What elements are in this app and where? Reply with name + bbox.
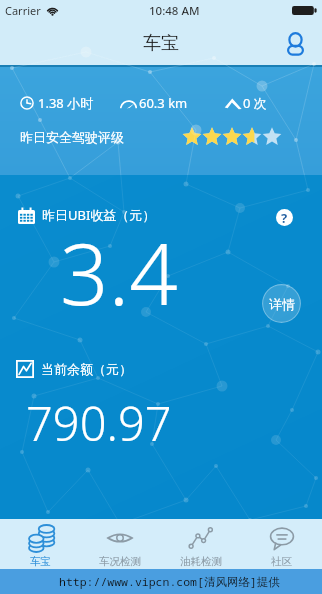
button[interactable]: 车宝 (0, 519, 80, 569)
staticText: 790.97 (26, 391, 172, 455)
staticText: 详情 (269, 296, 295, 312)
staticText: 油耗检测 (180, 555, 222, 568)
button[interactable]: Help (276, 209, 293, 226)
staticText: 60.3 km (139, 94, 188, 112)
staticText: 1.38 小时 (38, 94, 94, 112)
staticText: Carrier (5, 3, 41, 18)
button[interactable]: 车况检测 (80, 519, 160, 569)
staticText: 社区 (271, 555, 292, 568)
staticText: ? (281, 209, 288, 226)
staticText: 10:48 AM (149, 3, 200, 19)
staticText: http://www.vipcn.com[清风网络]提供 (59, 574, 280, 590)
staticText: 车况检测 (99, 555, 141, 568)
staticText: 昨日UBI收益（元） (42, 206, 156, 224)
staticText: 3.4 (60, 214, 178, 330)
staticText: 车宝 (30, 555, 51, 568)
staticText: 昨日安全驾驶评级 (20, 129, 124, 145)
button[interactable]: Profile (287, 32, 304, 55)
button[interactable]: 社区 (241, 519, 322, 569)
staticText: 车宝 (143, 32, 179, 55)
button[interactable]: 油耗检测 (160, 519, 241, 569)
staticText: 当前余额（元） (41, 361, 132, 377)
button[interactable]: 详情 (262, 284, 301, 323)
staticText: 0 次 (243, 94, 267, 112)
